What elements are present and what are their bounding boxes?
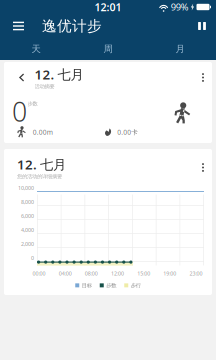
button[interactable]: 菜单 <box>0 14 32 38</box>
button[interactable]: 逸优计步 <box>32 14 102 38</box>
staticText: 23:00 <box>189 270 202 277</box>
button[interactable]: 天 <box>0 38 72 60</box>
staticText: 12:00 <box>111 270 124 277</box>
staticText: 您的活动的详细摘要 <box>17 173 62 180</box>
staticText: 月 <box>175 43 184 55</box>
staticText: 00:00 <box>33 270 46 277</box>
staticText: 0 <box>12 94 27 129</box>
staticText: 15:00 <box>137 270 150 277</box>
staticText: 0 <box>31 254 34 262</box>
staticText: 08:00 <box>85 270 98 277</box>
button[interactable]: 月 <box>144 38 216 60</box>
staticText: 目标 <box>82 282 92 289</box>
staticText: 周 <box>103 43 112 55</box>
staticText: 8,000 <box>21 198 34 206</box>
button[interactable]: 更多 <box>194 68 212 87</box>
staticText: 10,000 <box>18 184 34 192</box>
staticText: 步数 <box>106 282 116 289</box>
button[interactable]: 更多 <box>194 158 212 177</box>
button[interactable]: 暂停 <box>188 14 216 38</box>
staticText: 4,000 <box>21 226 34 234</box>
staticText: 19:00 <box>163 270 176 277</box>
staticText: 0.00m <box>33 128 53 137</box>
button[interactable]: 上一天 <box>4 68 34 87</box>
staticText: 逸优计步 <box>42 17 102 35</box>
staticText: 12:01 <box>94 0 121 14</box>
staticText: 2,000 <box>21 240 34 248</box>
staticText: 6,000 <box>21 212 34 220</box>
staticText: 0.00卡 <box>117 128 138 137</box>
button[interactable]: 周 <box>72 38 144 60</box>
staticText: 天 <box>31 43 40 55</box>
staticText: 步数 <box>27 100 37 107</box>
staticText: 99% <box>171 1 189 13</box>
staticText: 步行 <box>131 282 141 289</box>
staticText: 活动摘要 <box>34 83 54 90</box>
staticText: 12. 七月 <box>17 155 66 173</box>
staticText: 04:00 <box>59 270 72 277</box>
staticText: 12. 七月 <box>34 65 83 83</box>
